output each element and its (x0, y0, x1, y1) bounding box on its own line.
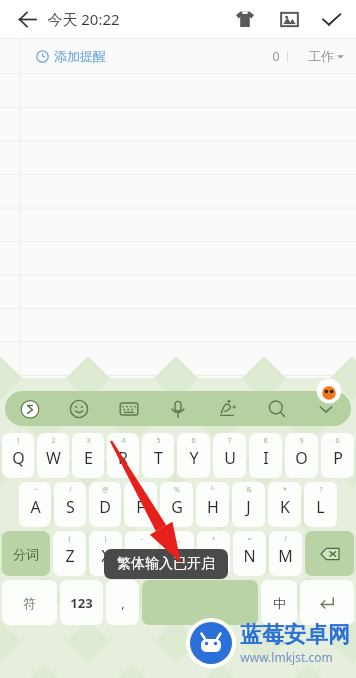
button[interactable]: 1 (2, 433, 34, 478)
staticText: R (118, 447, 128, 469)
staticText: Y (189, 447, 199, 469)
staticText: E (84, 447, 93, 469)
button[interactable]: Sogou input (15, 394, 45, 424)
staticText: 工作 (308, 48, 334, 64)
staticText: 符 (23, 595, 36, 611)
staticText: 中 (273, 595, 286, 611)
staticText: O (295, 447, 308, 469)
button[interactable]: 2 (37, 433, 69, 478)
staticText: , (121, 594, 125, 612)
button[interactable]: # (124, 482, 157, 527)
staticText: 繁体输入已开启 (117, 555, 215, 573)
button[interactable]: 0 (321, 433, 354, 478)
button[interactable]: 4 (107, 433, 139, 478)
button[interactable]: 3 (72, 433, 104, 478)
button[interactable]: More (311, 394, 341, 424)
staticText: 3 (86, 436, 91, 446)
button[interactable]: 8 (249, 433, 282, 478)
staticText: W (46, 447, 61, 469)
staticText: & (246, 485, 252, 495)
button[interactable]: ) (89, 531, 122, 576)
staticText: S (66, 496, 75, 518)
staticText: ? (319, 485, 323, 495)
staticText: F (136, 496, 145, 518)
button[interactable]: 9 (285, 433, 318, 478)
staticText: X (101, 545, 111, 567)
button[interactable]: 工作 (308, 48, 344, 64)
staticText: ) (104, 534, 107, 544)
staticText: P (333, 447, 343, 469)
staticText: L (316, 496, 325, 518)
staticText: T (154, 447, 163, 469)
staticText: B (208, 545, 219, 567)
staticText: _ (176, 534, 180, 544)
staticText: ~ (33, 485, 38, 495)
button[interactable]: Done (314, 2, 348, 36)
staticText: - (140, 534, 143, 544)
staticText: 123 (70, 594, 93, 612)
staticText: 9 (299, 436, 304, 446)
button[interactable]: Delete (305, 531, 354, 576)
staticText: 6 (191, 436, 196, 446)
button[interactable]: 7 (213, 433, 246, 478)
button[interactable]: Insert picture (272, 2, 306, 36)
button[interactable]: & (232, 482, 265, 527)
button[interactable]: Assistant (316, 378, 342, 404)
staticText: 蓝莓安卓网 (240, 621, 350, 649)
staticText: N (243, 545, 256, 567)
button[interactable]: Handwriting (212, 394, 242, 424)
staticText: * (283, 485, 287, 495)
staticText: 4 (121, 436, 126, 446)
button[interactable]: Enter (300, 580, 354, 625)
button[interactable]: 6 (177, 433, 210, 478)
staticText: C (136, 545, 147, 567)
button[interactable]: * (268, 482, 301, 527)
staticText: 5 (156, 436, 161, 446)
button[interactable]: Emoji (64, 394, 94, 424)
button[interactable]: ? (304, 482, 337, 527)
staticText: www.lmkjst.com (240, 649, 333, 665)
staticText: Q (12, 447, 25, 469)
button[interactable]: 添加提醒 (0, 38, 356, 74)
staticText: V (173, 545, 183, 567)
button[interactable]: Search (262, 394, 292, 424)
button[interactable]: @ (89, 482, 121, 527)
button[interactable]: ( (53, 531, 86, 576)
staticText: I (263, 447, 269, 469)
staticText: U (224, 447, 236, 469)
staticText: K (280, 496, 290, 518)
button[interactable]: % (160, 482, 193, 527)
button[interactable]: Voice input (163, 394, 193, 424)
button[interactable]: ^ (196, 482, 229, 527)
button[interactable]: = (233, 531, 266, 576)
staticText: G (171, 496, 183, 518)
staticText: ^ (210, 485, 215, 495)
button[interactable]: Symbols (2, 580, 57, 625)
staticText: @ (102, 485, 109, 495)
button[interactable]: ~ (19, 482, 51, 527)
staticText: M (278, 545, 293, 567)
staticText: / (69, 485, 72, 495)
staticText: ( (68, 534, 71, 544)
button[interactable]: - (125, 531, 158, 576)
button[interactable]: 123 (60, 580, 103, 625)
staticText: D (99, 496, 111, 518)
button[interactable]: Comma (106, 580, 139, 625)
button[interactable]: Theme (228, 2, 262, 36)
staticText: 1 (16, 436, 21, 446)
staticText: 2 (51, 436, 56, 446)
button[interactable] (0, 74, 356, 378)
button[interactable]: / (54, 482, 86, 527)
staticText: J (246, 496, 251, 518)
button[interactable]: 分词 (2, 531, 50, 576)
button[interactable]: Keyboard layout (114, 394, 144, 424)
button[interactable]: Space (142, 580, 258, 625)
staticText: 7 (227, 436, 232, 446)
button[interactable]: 中 (261, 580, 297, 625)
button[interactable]: + (197, 531, 230, 576)
button[interactable]: Back (12, 4, 42, 34)
button[interactable]: / (269, 531, 302, 576)
button[interactable]: 5 (142, 433, 174, 478)
button[interactable]: _ (161, 531, 194, 576)
staticText: H (207, 496, 219, 518)
